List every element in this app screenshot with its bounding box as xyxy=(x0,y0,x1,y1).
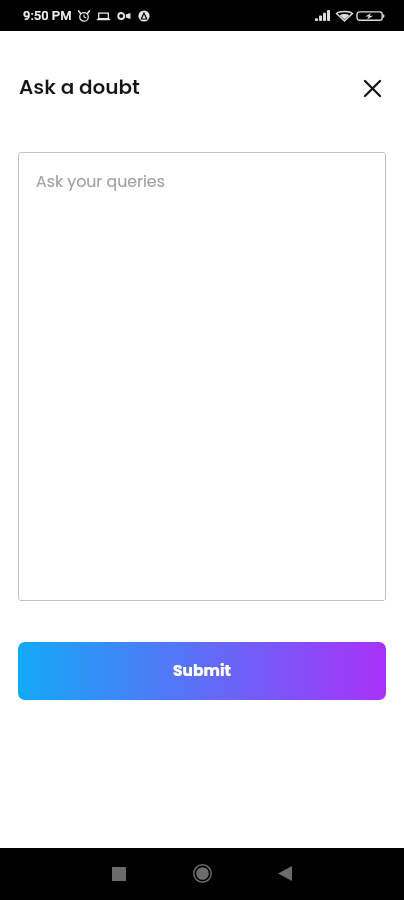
staticText: 9:50 PM xyxy=(23,8,72,23)
button[interactable]: Submit xyxy=(18,642,386,700)
button[interactable]: Close xyxy=(352,68,392,108)
button[interactable]: Ask your queries xyxy=(18,152,386,601)
button[interactable]: Recents xyxy=(95,850,142,897)
staticText: Ask a doubt xyxy=(19,73,140,101)
staticText: Ask your queries xyxy=(36,170,165,192)
button[interactable]: Home xyxy=(179,850,226,897)
staticText: Submit xyxy=(173,660,231,682)
button[interactable]: Back xyxy=(261,850,308,897)
